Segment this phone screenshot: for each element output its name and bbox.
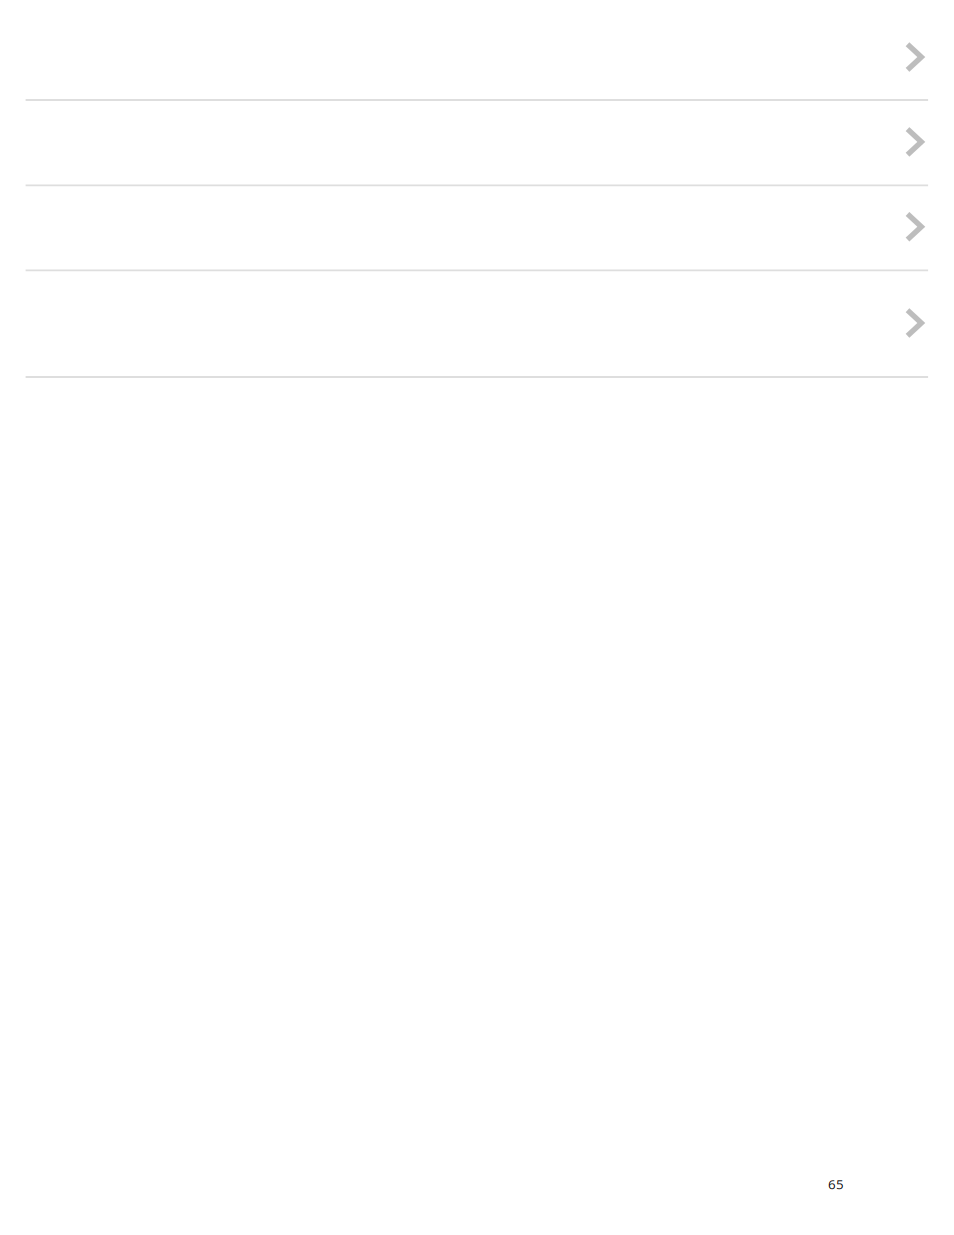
- button[interactable]: Open item 3: [0, 186, 954, 269]
- button[interactable]: Open item 2: [0, 101, 954, 184]
- button[interactable]: Open item 1: [0, 15, 954, 99]
- staticText: 65: [828, 1175, 844, 1193]
